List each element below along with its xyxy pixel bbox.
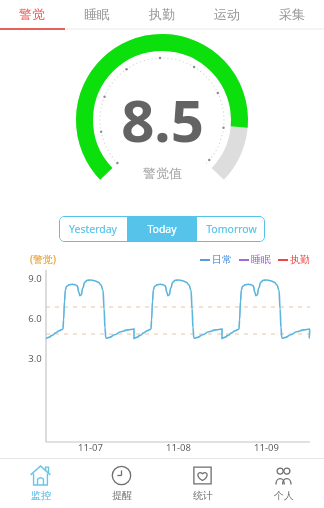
staticText: 监控 bbox=[31, 489, 51, 502]
staticText: 运动 bbox=[214, 6, 240, 22]
button[interactable]: 提醒 bbox=[81, 459, 162, 508]
button[interactable]: 统计 bbox=[162, 459, 243, 508]
staticText: 提醒 bbox=[112, 489, 132, 502]
staticText: Yesterday bbox=[69, 222, 117, 236]
button[interactable]: 监控 bbox=[0, 459, 81, 508]
staticText: 9.0 bbox=[28, 272, 42, 285]
staticText: 执勤 bbox=[290, 253, 310, 266]
button[interactable]: Today bbox=[128, 216, 196, 242]
staticText: 执勤 bbox=[149, 6, 175, 22]
staticText: (警觉) bbox=[30, 252, 56, 266]
button[interactable]: 个人 bbox=[243, 459, 324, 508]
staticText: 11-09 bbox=[254, 441, 279, 454]
staticText: 睡眠 bbox=[251, 253, 271, 266]
staticText: 个人 bbox=[274, 489, 294, 502]
staticText: 日常 bbox=[212, 253, 232, 266]
staticText: 采集 bbox=[279, 6, 305, 22]
staticText: 8.5 bbox=[121, 80, 204, 159]
staticText: Today bbox=[147, 222, 177, 236]
button[interactable]: Yesterday bbox=[59, 216, 127, 242]
staticText: 统计 bbox=[193, 489, 213, 502]
staticText: 11-08 bbox=[166, 441, 191, 454]
button[interactable]: 警觉 bbox=[0, 0, 64, 28]
staticText: 睡眠 bbox=[84, 6, 110, 22]
staticText: 6.0 bbox=[28, 312, 42, 325]
button[interactable]: Tomorrow bbox=[197, 216, 265, 242]
staticText: Tomorrow bbox=[206, 222, 257, 236]
staticText: 3.0 bbox=[28, 352, 42, 365]
button[interactable]: 睡眠 bbox=[64, 0, 129, 28]
staticText: 警觉 bbox=[19, 6, 45, 22]
staticText: 11-07 bbox=[78, 441, 103, 454]
button[interactable]: 执勤 bbox=[129, 0, 194, 28]
staticText: 警觉值 bbox=[143, 165, 182, 181]
button[interactable]: 运动 bbox=[194, 0, 259, 28]
button[interactable]: 采集 bbox=[259, 0, 324, 28]
